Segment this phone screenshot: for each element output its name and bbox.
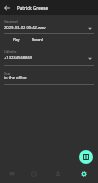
staticText: User bbox=[4, 72, 11, 76]
staticText: 2029-03-02 00:42.wav bbox=[4, 25, 46, 31]
staticText: Patrick Greese bbox=[17, 5, 49, 11]
staticText: Called to bbox=[4, 50, 17, 54]
button[interactable]: Back bbox=[0, 0, 13, 15]
staticText: Voicemail bbox=[4, 20, 18, 24]
button[interactable]: Edit bbox=[79, 150, 93, 164]
button[interactable]: Contacts bbox=[49, 165, 67, 183]
button[interactable]: Messages bbox=[3, 165, 21, 183]
staticText: in the office bbox=[4, 75, 27, 81]
button[interactable]: Record bbox=[29, 37, 46, 43]
staticText: +13234568869 bbox=[4, 55, 33, 61]
staticText: Record bbox=[32, 38, 43, 42]
button[interactable]: Settings bbox=[75, 165, 93, 183]
button[interactable]: Play bbox=[10, 37, 23, 43]
staticText: Play bbox=[13, 38, 20, 42]
